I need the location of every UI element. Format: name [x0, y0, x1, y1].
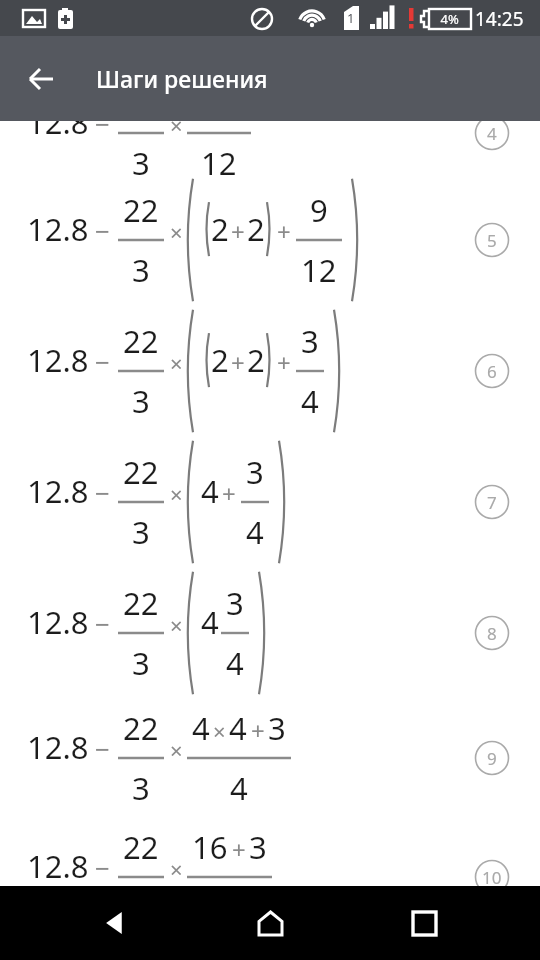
button[interactable]: Back: [20, 58, 62, 100]
button[interactable]: Home: [242, 895, 298, 951]
button[interactable]: Back: [88, 895, 144, 951]
button[interactable]: Recents: [396, 895, 452, 951]
